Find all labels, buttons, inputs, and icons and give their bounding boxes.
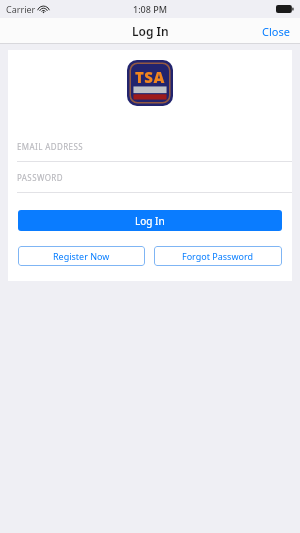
staticText: PASSWORD <box>17 172 63 183</box>
staticText: Close <box>262 24 290 39</box>
button[interactable]: PASSWORD <box>8 163 292 192</box>
staticText: Register Now <box>53 250 110 262</box>
staticText: Log In <box>132 23 169 39</box>
staticText: Forgot Password <box>182 250 254 262</box>
button[interactable]: Forgot Password <box>154 246 282 266</box>
button[interactable]: Register Now <box>18 246 145 266</box>
staticText: Carrier <box>6 3 36 15</box>
staticText: Log In <box>135 214 165 228</box>
button[interactable]: EMAIL ADDRESS <box>8 132 292 161</box>
button[interactable]: Log In <box>18 210 282 231</box>
staticText: EMAIL ADDRESS <box>17 141 83 152</box>
button[interactable]: Close <box>252 20 300 43</box>
staticText: TSA <box>135 67 165 87</box>
other: TSA Group Automotive logo <box>127 60 173 106</box>
staticText: 1:08 PM <box>133 3 167 15</box>
